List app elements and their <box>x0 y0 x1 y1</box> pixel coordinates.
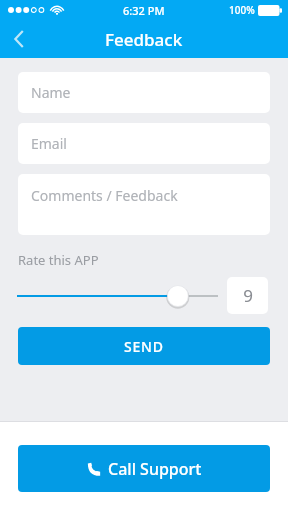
staticText: 9 <box>243 284 253 307</box>
staticText: Rate this APP <box>18 251 99 269</box>
button[interactable]: Rating slider <box>17 282 218 310</box>
button[interactable]: SEND <box>18 327 270 365</box>
button[interactable]: Comments / Feedback <box>18 174 270 235</box>
staticText: Call Support <box>108 458 202 480</box>
staticText: Name <box>31 83 71 102</box>
staticText: SEND <box>124 337 164 356</box>
button[interactable]: Name <box>18 72 270 113</box>
staticText: Comments / Feedback <box>31 186 178 205</box>
staticText: Feedback <box>105 28 183 51</box>
button[interactable]: Call Support <box>18 445 270 492</box>
staticText: 6:32 PM <box>123 3 165 18</box>
staticText: Email <box>31 134 67 153</box>
button[interactable]: Email <box>18 123 270 164</box>
button[interactable]: Back <box>0 20 38 58</box>
staticText: 100% <box>229 3 255 17</box>
